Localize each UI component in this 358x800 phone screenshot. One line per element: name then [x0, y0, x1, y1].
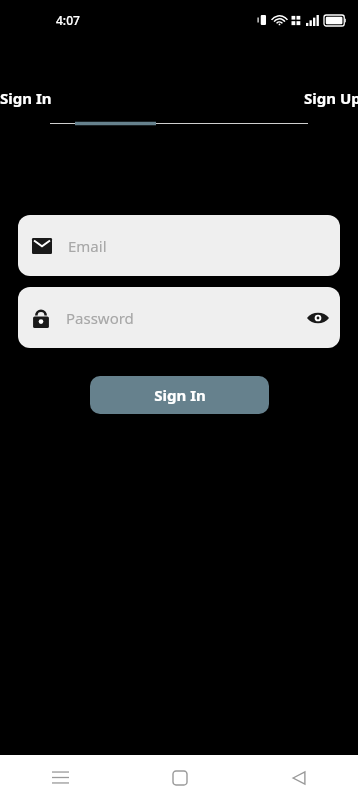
button[interactable]: Sign In: [90, 376, 269, 414]
staticText: Password: [66, 308, 298, 328]
button[interactable]: Show password: [298, 298, 338, 338]
button[interactable]: Password: [18, 287, 340, 348]
staticText: Sign Up: [304, 88, 358, 108]
button[interactable]: Recent apps: [0, 755, 120, 800]
staticText: Sign In: [154, 385, 206, 405]
button[interactable]: Sign Up: [179, 88, 358, 108]
staticText: Sign In: [0, 88, 52, 108]
button[interactable]: Home: [120, 755, 239, 800]
staticText: 4:07: [56, 12, 80, 28]
staticText: Email: [68, 236, 107, 256]
button[interactable]: Back: [239, 755, 358, 800]
button[interactable]: Email: [18, 215, 340, 276]
button[interactable]: Sign In: [0, 88, 179, 108]
